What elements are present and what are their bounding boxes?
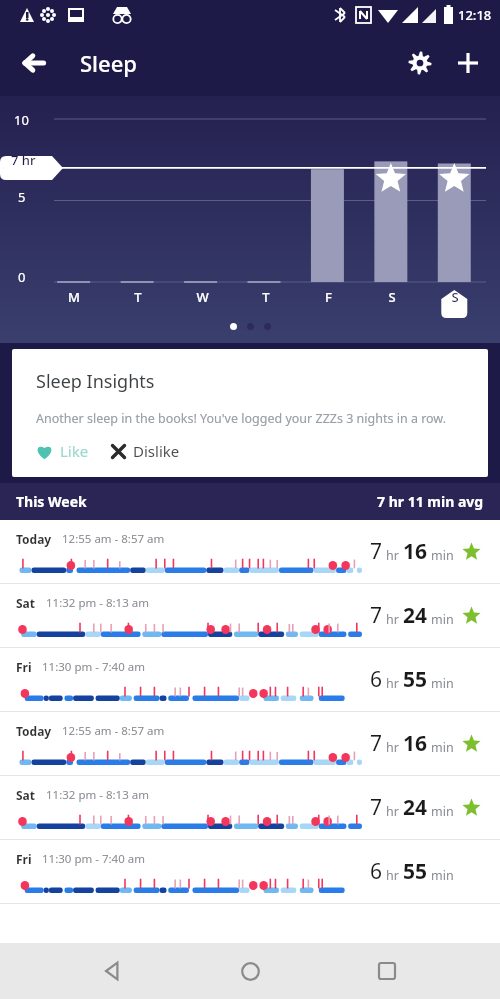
staticText: 11:32 pm - 8:13 am — [46, 787, 149, 803]
button[interactable]: Like — [36, 441, 95, 461]
staticText: 10 — [14, 111, 29, 129]
staticText: S — [388, 288, 396, 306]
staticText: 7 — [370, 601, 383, 630]
staticText: Fri — [16, 659, 32, 675]
button[interactable]: Back — [89, 947, 137, 995]
staticText: min — [431, 803, 454, 820]
staticText: This Week — [16, 492, 87, 511]
staticText: T — [134, 288, 142, 306]
staticText: Fri — [16, 851, 32, 867]
staticText: 5 — [18, 188, 26, 206]
staticText: 12:55 am - 8:57 am — [62, 723, 165, 739]
button[interactable]: Sat — [0, 584, 500, 647]
button[interactable]: Sat — [0, 776, 500, 839]
staticText: hr — [386, 611, 399, 628]
staticText: T — [262, 288, 270, 306]
staticText: 6 — [370, 857, 383, 886]
staticText: 55 — [403, 857, 428, 886]
staticText: 12:18 — [458, 6, 492, 24]
staticText: 16 — [403, 537, 428, 566]
staticText: 7 hr 11 min avg — [377, 492, 484, 511]
staticText: min — [431, 867, 454, 884]
staticText: Sat — [16, 595, 36, 611]
staticText: min — [431, 611, 454, 628]
staticText: Sleep — [80, 48, 137, 78]
staticText: 7 — [370, 537, 383, 566]
staticText: 16 — [403, 729, 428, 758]
staticText: 7 — [370, 793, 383, 822]
staticText: 11:30 pm - 7:40 am — [42, 659, 145, 675]
staticText: Like — [60, 441, 89, 461]
staticText: Another sleep in the books! You've logge… — [36, 410, 447, 427]
staticText: W — [196, 288, 209, 306]
button[interactable]: Back — [12, 41, 56, 85]
button[interactable]: Settings — [396, 39, 444, 87]
staticText: Sat — [16, 787, 36, 803]
staticText: Today — [16, 531, 52, 547]
staticText: Today — [16, 723, 52, 739]
button[interactable]: Today — [0, 712, 500, 775]
staticText: 7 hr — [11, 151, 36, 169]
staticText: 0 — [18, 268, 26, 286]
staticText: min — [431, 739, 454, 756]
staticText: 11:30 pm - 7:40 am — [42, 851, 145, 867]
staticText: 24 — [403, 793, 428, 822]
staticText: hr — [386, 547, 399, 564]
button[interactable]: Fri — [0, 648, 500, 711]
staticText: F — [325, 288, 332, 306]
staticText: hr — [386, 739, 399, 756]
staticText: Dislike — [133, 441, 180, 461]
button[interactable]: Home — [226, 947, 274, 995]
staticText: hr — [386, 867, 399, 884]
staticText: 7 — [370, 729, 383, 758]
staticText: 55 — [403, 665, 428, 694]
staticText: 11:32 pm - 8:13 am — [46, 595, 149, 611]
staticText: hr — [386, 675, 399, 692]
staticText: 12:55 am - 8:57 am — [62, 531, 165, 547]
staticText: Sleep Insights — [36, 369, 155, 394]
staticText: 24 — [403, 601, 428, 630]
staticText: min — [431, 547, 454, 564]
staticText: min — [431, 675, 454, 692]
button[interactable]: Fri — [0, 840, 500, 903]
button[interactable]: Add — [444, 39, 492, 87]
button[interactable]: Dislike — [111, 441, 186, 461]
staticText: 6 — [370, 665, 383, 694]
staticText: hr — [386, 803, 399, 820]
button[interactable]: Today — [0, 520, 500, 583]
button[interactable]: Recents — [363, 947, 411, 995]
staticText: S — [451, 288, 459, 306]
staticText: M — [68, 288, 80, 306]
